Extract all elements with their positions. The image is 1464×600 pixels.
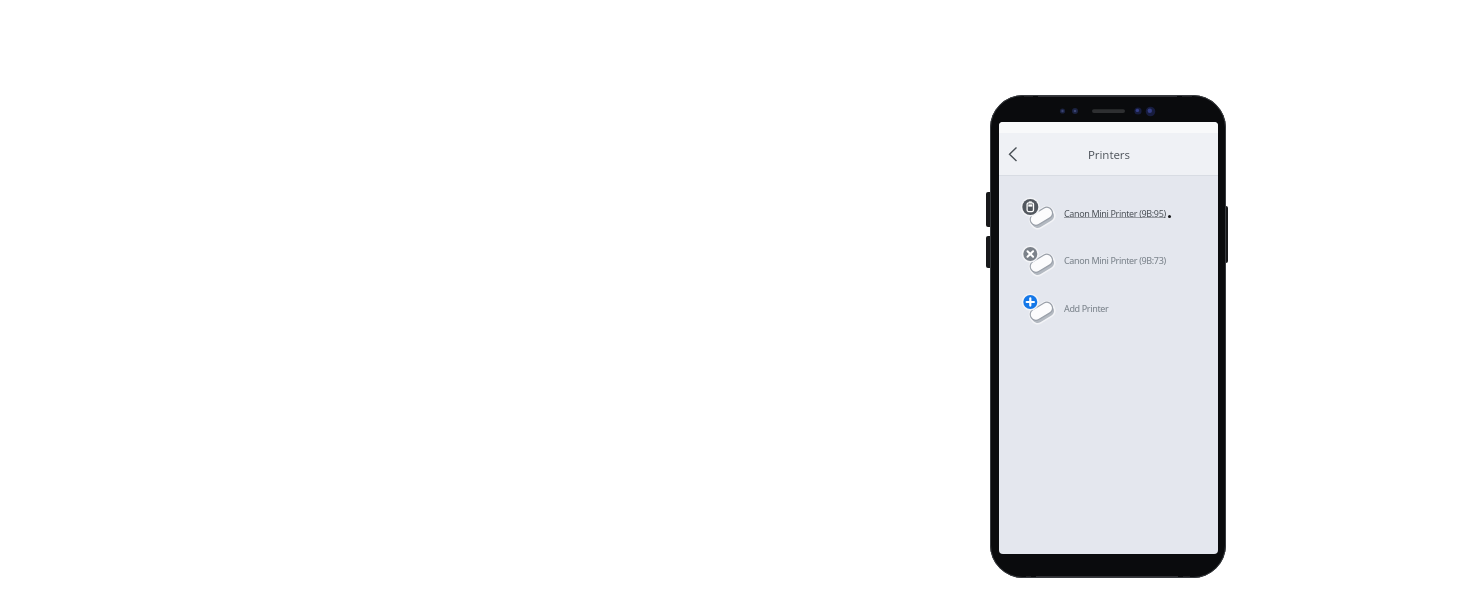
button[interactable]: Canon Mini Printer (9B:95) <box>999 193 1218 233</box>
staticText: Printers <box>1088 147 1130 163</box>
staticText: Canon Mini Printer (9B:73) <box>1064 254 1166 266</box>
staticText: Add Printer <box>1064 302 1109 314</box>
button[interactable] <box>999 133 1027 176</box>
staticText: Canon Mini Printer (9B:95) <box>1064 207 1166 219</box>
button[interactable]: Canon Mini Printer (9B:73) <box>999 240 1218 280</box>
button[interactable]: Add Printer <box>999 288 1218 328</box>
